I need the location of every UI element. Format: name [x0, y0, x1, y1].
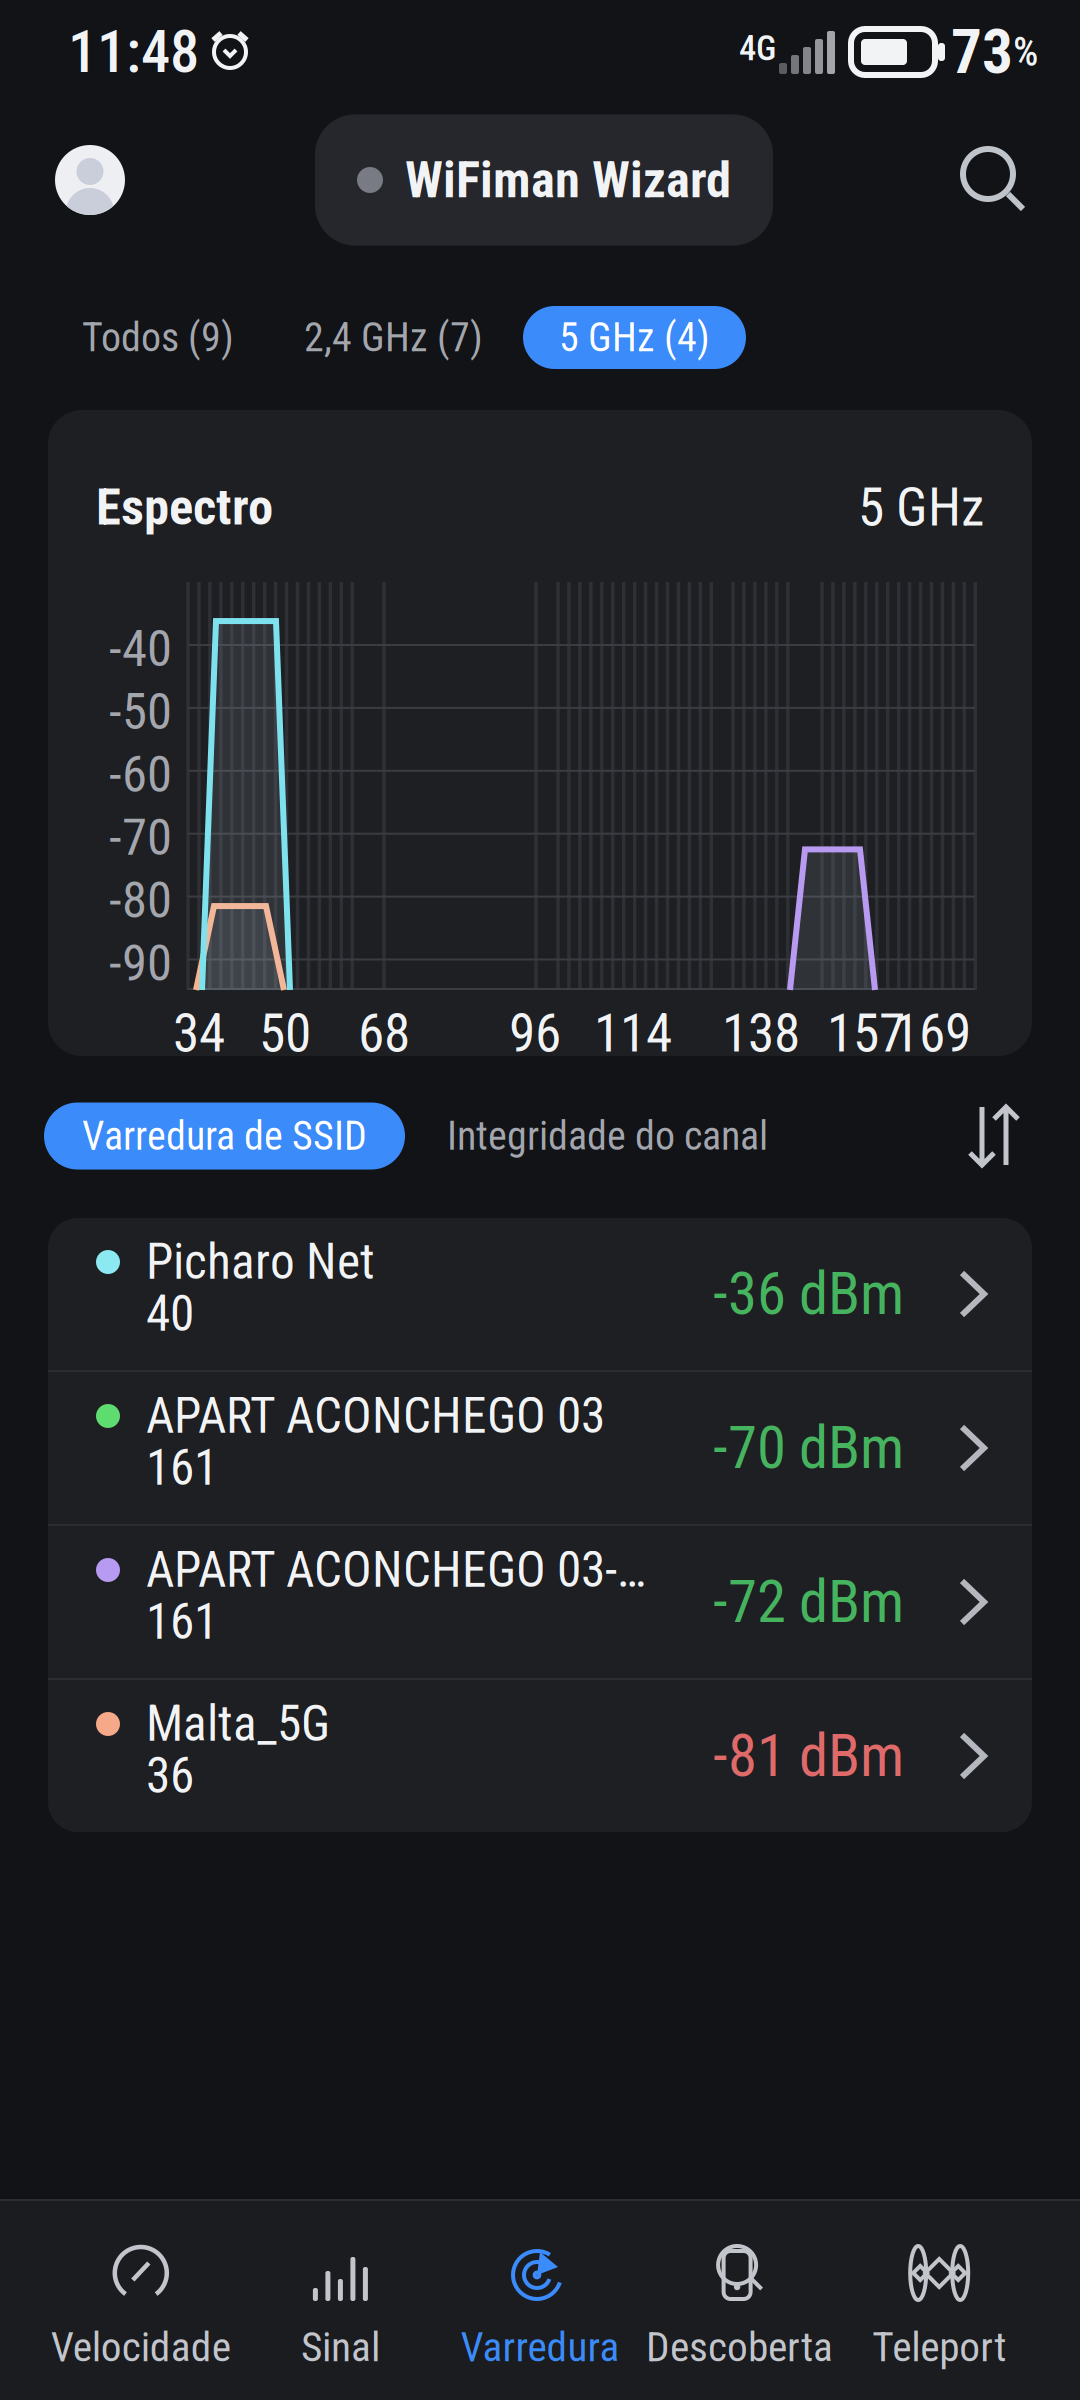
staticText: 4G	[739, 28, 776, 69]
staticText: Todos (9)	[82, 314, 234, 361]
staticText: -72 dBm	[713, 1568, 904, 1636]
staticText: 114	[594, 1002, 672, 1064]
staticText: Descoberta	[646, 2323, 833, 2371]
button[interactable]: Sort	[954, 1093, 1036, 1179]
staticText: 96	[509, 1002, 561, 1064]
staticText: -90	[109, 933, 172, 993]
staticText: Varredura de SSID	[82, 1113, 367, 1159]
staticText: 169	[893, 1002, 971, 1064]
button[interactable]: Sinal	[241, 2201, 440, 2400]
staticText: %	[1013, 29, 1038, 75]
button[interactable]: 5 GHz (4)	[523, 306, 746, 369]
staticText: -70 dBm	[713, 1414, 904, 1482]
staticText: 50	[259, 1002, 311, 1064]
staticText: Teleport	[872, 2323, 1006, 2371]
button[interactable]: Varredura	[440, 2201, 640, 2400]
staticText: -40	[109, 619, 172, 678]
staticText: Picharo Net	[146, 1233, 375, 1291]
staticText: -70	[109, 808, 172, 867]
staticText: Sinal	[301, 2323, 380, 2371]
button[interactable]: Descoberta	[640, 2201, 839, 2400]
button[interactable]: Search	[951, 137, 1037, 223]
staticText: 161	[146, 1593, 218, 1651]
button[interactable]: Profile	[43, 133, 137, 227]
staticText: 157	[827, 1002, 905, 1064]
button[interactable]: Picharo Net	[48, 1218, 1032, 1370]
staticText: 5 GHz	[858, 476, 984, 538]
staticText: 138	[722, 1002, 800, 1064]
staticText: 73	[951, 16, 1013, 88]
button[interactable]: Malta_5G	[48, 1680, 1032, 1832]
staticText: Velocidade	[51, 2323, 231, 2371]
staticText: Varredura	[460, 2323, 619, 2371]
staticText: Malta_5G	[146, 1695, 330, 1753]
staticText: -50	[109, 682, 172, 741]
staticText: 11:48	[68, 18, 199, 86]
button[interactable]: Integridade do canal	[415, 1102, 800, 1169]
button[interactable]: Teleport	[839, 2201, 1039, 2400]
staticText: 40	[146, 1285, 194, 1343]
staticText: APART ACONCHEGO 03-…	[146, 1541, 646, 1599]
staticText: 161	[146, 1439, 218, 1497]
button[interactable]: APART ACONCHEGO 03-…	[48, 1526, 1032, 1678]
staticText: Espectro	[96, 478, 273, 537]
button[interactable]: Todos (9)	[52, 306, 264, 369]
staticText: -81 dBm	[713, 1722, 904, 1790]
staticText: Integridade do canal	[447, 1113, 768, 1159]
staticText: 34	[173, 1002, 225, 1064]
button[interactable]: 2,4 GHz (7)	[276, 306, 511, 369]
staticText: 2,4 GHz (7)	[304, 314, 483, 361]
button[interactable]: Varredura de SSID	[44, 1102, 405, 1169]
staticText: 68	[358, 1002, 410, 1064]
staticText: -80	[109, 871, 172, 930]
button[interactable]: WiFiman Wizard	[315, 114, 773, 245]
staticText: -36 dBm	[713, 1260, 904, 1328]
staticText: WiFiman Wizard	[405, 150, 731, 210]
button[interactable]: Velocidade	[41, 2201, 241, 2400]
staticText: 36	[146, 1747, 194, 1805]
staticText: 5 GHz (4)	[559, 314, 710, 361]
button[interactable]: APART ACONCHEGO 03	[48, 1372, 1032, 1524]
staticText: APART ACONCHEGO 03	[146, 1387, 605, 1445]
staticText: -60	[109, 745, 172, 804]
